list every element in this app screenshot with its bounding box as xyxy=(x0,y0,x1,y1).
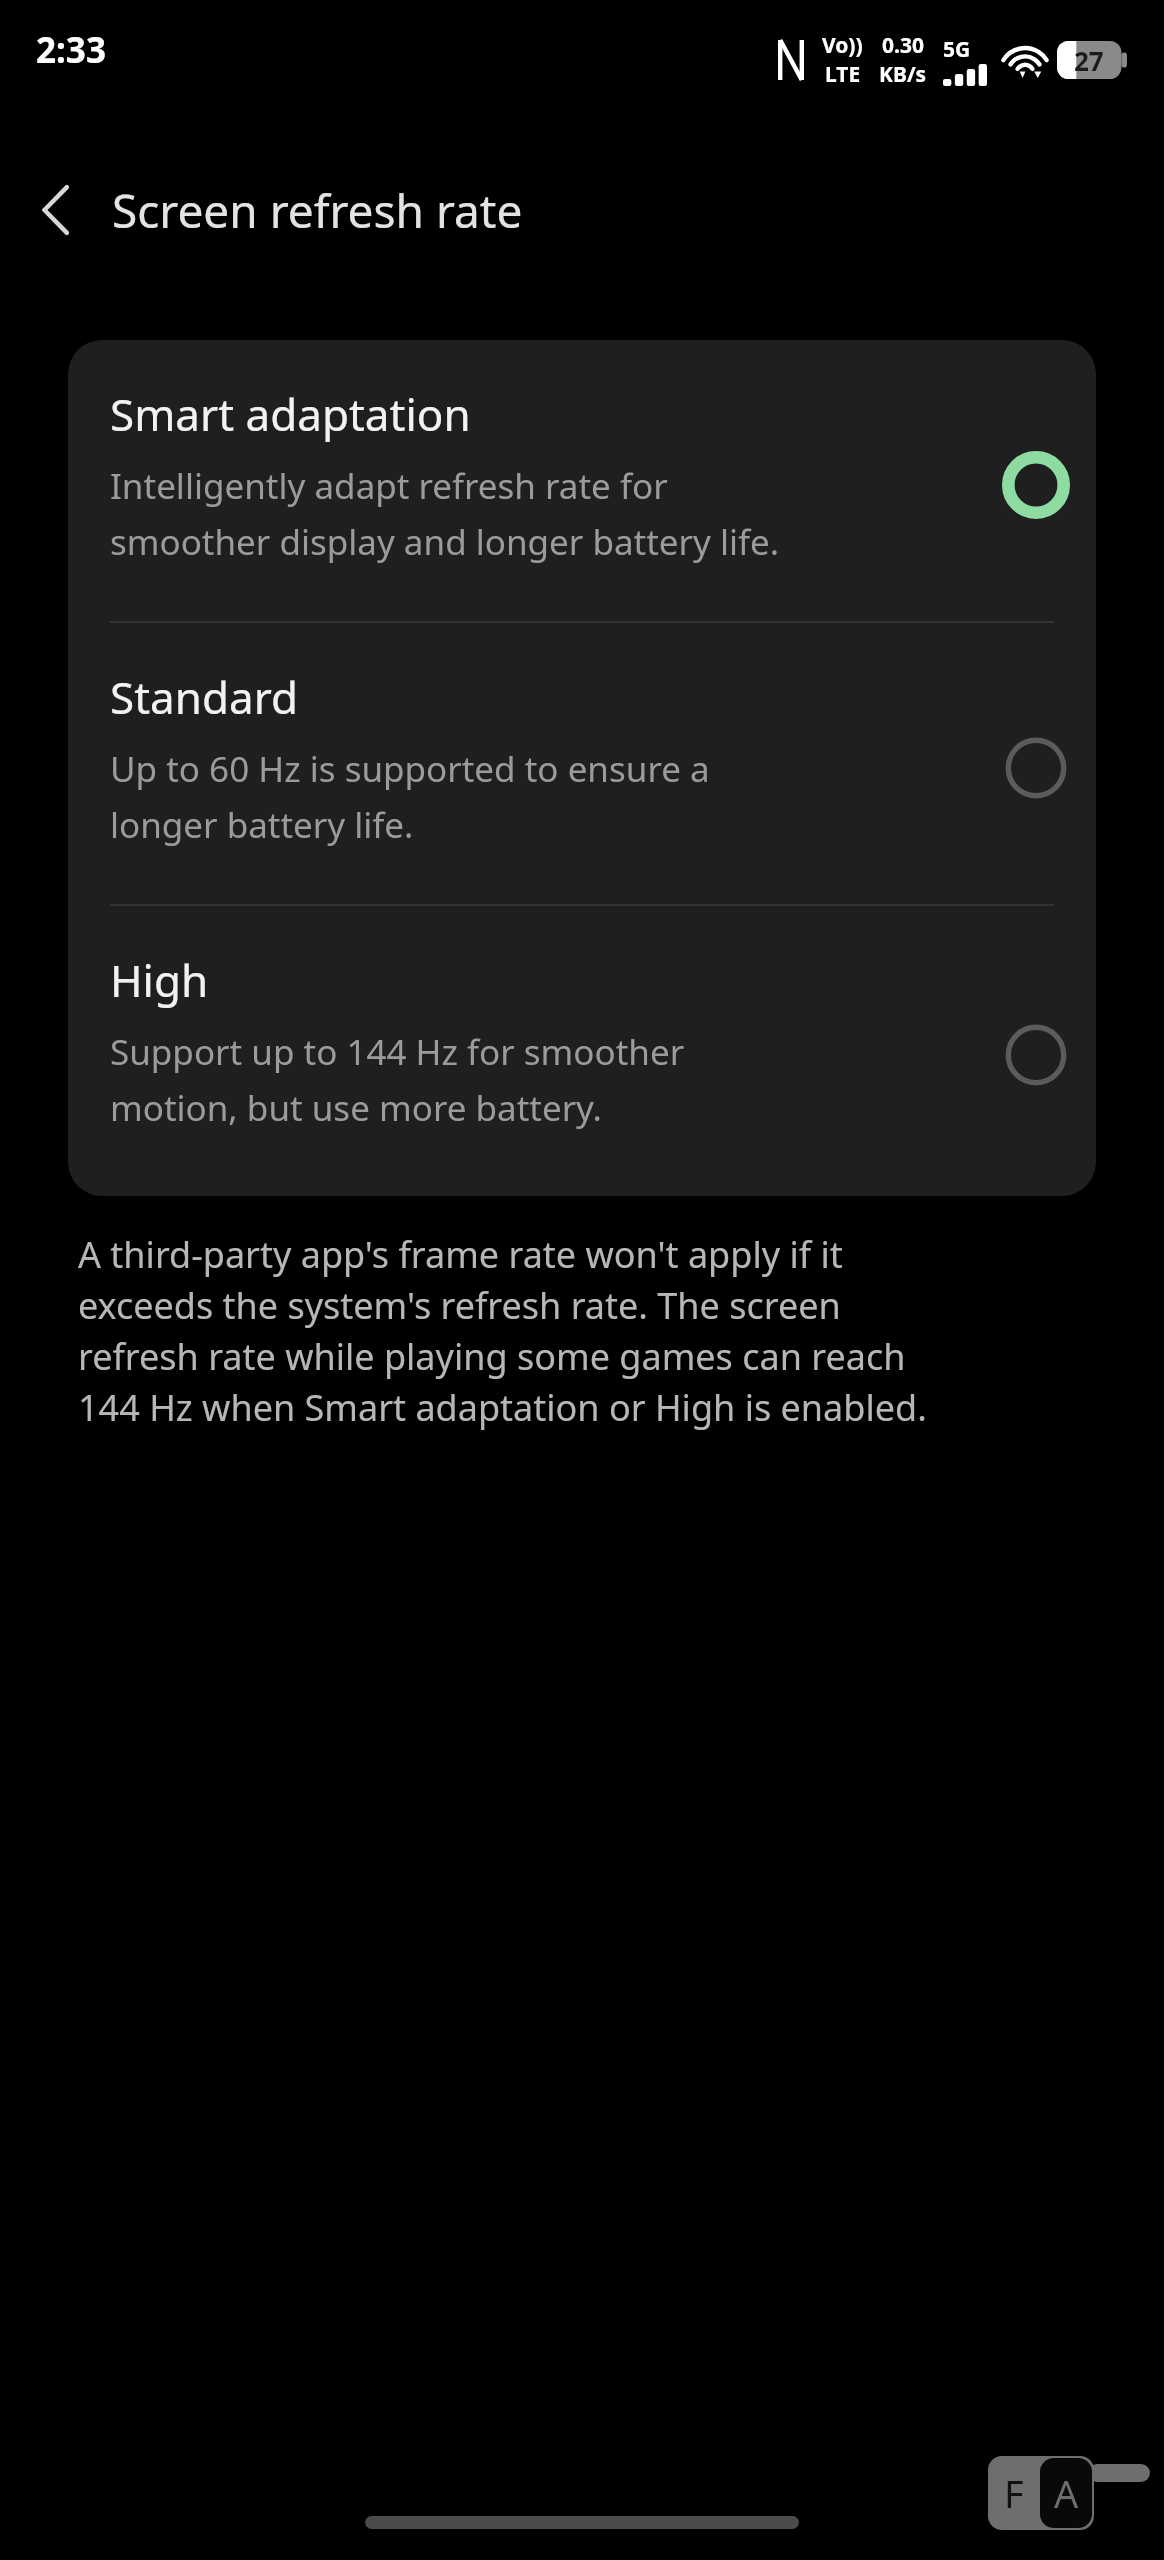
staticText: KB/s xyxy=(879,60,927,89)
staticText: Up to 60 Hz is supported to ensure a xyxy=(110,745,710,793)
staticText: 144 Hz when Smart adaptation or High is … xyxy=(78,1383,927,1432)
staticText: LTE xyxy=(825,60,861,89)
staticText: 2:33 xyxy=(36,26,106,74)
button[interactable]: High xyxy=(68,906,1096,1196)
button[interactable]: Standard xyxy=(68,623,1096,904)
staticText: Intelligently adapt refresh rate for xyxy=(110,462,668,510)
staticText: 5G xyxy=(943,35,971,64)
staticText: Smart adaptation xyxy=(110,384,471,444)
staticText: A xyxy=(1054,2467,1079,2519)
staticText: Screen refresh rate xyxy=(112,179,523,242)
staticText: A third-party app's frame rate won't app… xyxy=(78,1230,843,1279)
staticText: motion, but use more battery. xyxy=(110,1084,602,1132)
staticText: refresh rate while playing some games ca… xyxy=(78,1332,906,1381)
staticText: F xyxy=(1004,2467,1024,2519)
button[interactable]: Back xyxy=(0,166,112,254)
staticText: Vo)) xyxy=(822,31,863,60)
staticText: smoother display and longer battery life… xyxy=(110,518,780,566)
staticText: longer battery life. xyxy=(110,801,414,849)
staticText: High xyxy=(110,950,209,1010)
button[interactable]: Floating assistant xyxy=(988,2456,1094,2530)
staticText: Support up to 144 Hz for smoother xyxy=(110,1028,685,1076)
staticText: 27 xyxy=(1074,43,1104,78)
staticText: exceeds the system's refresh rate. The s… xyxy=(78,1281,841,1330)
staticText: Standard xyxy=(110,667,299,727)
staticText: 0.30 xyxy=(882,31,924,60)
button[interactable]: Smart adaptation xyxy=(68,340,1096,621)
